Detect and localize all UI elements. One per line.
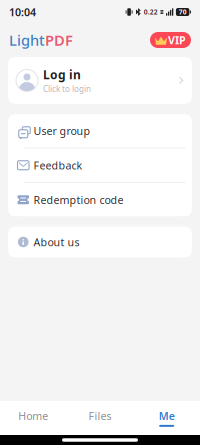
staticText: Home: [18, 409, 48, 423]
button[interactable]: Me: [133, 400, 200, 435]
button[interactable]: About us: [8, 226, 192, 257]
staticText: Me: [159, 409, 175, 423]
button[interactable]: Feedback: [8, 148, 192, 182]
button[interactable]: User group: [8, 114, 192, 147]
staticText: Files: [88, 409, 111, 423]
staticText: Redemption code: [33, 193, 123, 207]
staticText: PDF: [45, 30, 73, 50]
button[interactable]: Files: [67, 400, 133, 435]
staticText: VIP: [168, 33, 186, 47]
staticText: 70: [179, 8, 187, 16]
staticText: 0.22: [144, 8, 158, 16]
staticText: Log in: [43, 67, 81, 83]
staticText: Click to login: [43, 84, 91, 94]
staticText: 10:04: [9, 5, 36, 19]
staticText: Light: [9, 30, 45, 50]
button[interactable]: Home: [0, 400, 67, 435]
staticText: About us: [33, 235, 79, 249]
staticText: Feedback: [33, 158, 82, 172]
button[interactable]: Redemption code: [8, 183, 192, 216]
button[interactable]: VIP: [150, 32, 191, 48]
button[interactable]: Log in: [8, 57, 192, 104]
staticText: User group: [33, 124, 90, 138]
